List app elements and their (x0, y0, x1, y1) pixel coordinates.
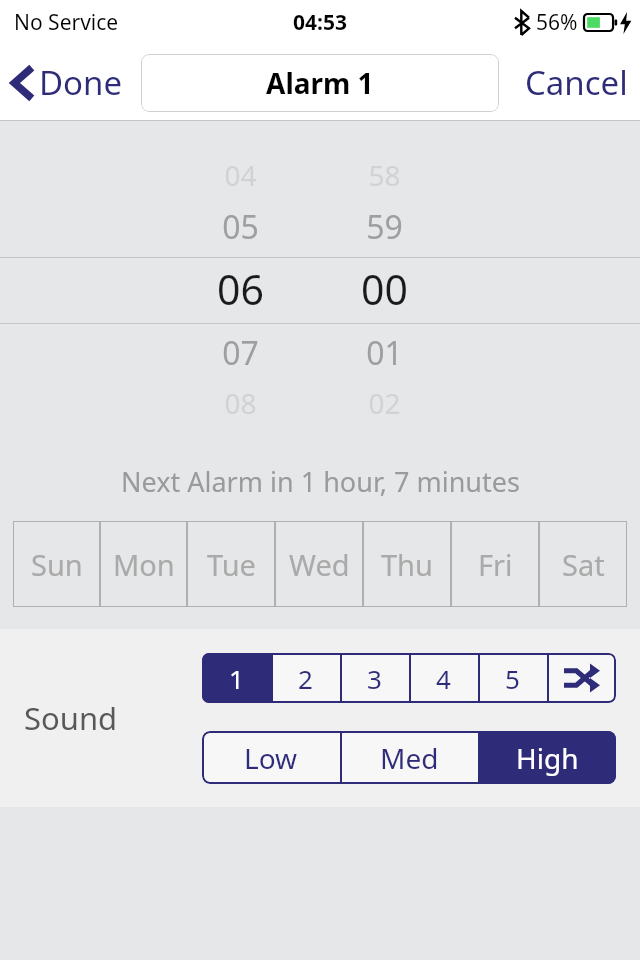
staticText: Done (39, 60, 123, 105)
button[interactable]: 3 (340, 653, 409, 703)
staticText: 3 (367, 661, 382, 696)
staticText: Thu (381, 545, 433, 584)
button[interactable]: Mon (100, 521, 187, 607)
staticText: Mon (113, 545, 175, 584)
button[interactable]: Wed (275, 521, 363, 607)
staticText: 07 (222, 331, 259, 375)
staticText: 04 (224, 156, 257, 194)
staticText: Tue (207, 545, 256, 584)
staticText: 59 (366, 205, 403, 249)
button[interactable]: Thu (363, 521, 451, 607)
staticText: No Service (14, 8, 119, 37)
button[interactable]: 2 (271, 653, 340, 703)
staticText: 1 (229, 661, 244, 696)
staticText: Fri (478, 545, 513, 584)
staticText: Wed (289, 545, 350, 584)
staticText: 00 (361, 261, 408, 317)
staticText: 2 (298, 661, 313, 696)
staticText: 5 (505, 661, 520, 696)
staticText: 56% (536, 8, 578, 37)
staticText: 04:53 (293, 8, 347, 37)
staticText: 4 (436, 661, 451, 696)
staticText: Next Alarm in 1 hour, 7 minutes (121, 463, 520, 500)
staticText: 08 (224, 384, 257, 422)
button[interactable]: 5 (478, 653, 547, 703)
staticText: Cancel (525, 60, 628, 105)
staticText: 06 (217, 261, 264, 317)
button[interactable]: Med (340, 731, 478, 784)
staticText: Sat (562, 545, 605, 584)
button[interactable]: High (478, 731, 616, 784)
staticText: 02 (368, 384, 401, 422)
button[interactable]: Alarm 1 (141, 54, 499, 112)
button[interactable]: Sun (13, 521, 100, 607)
staticText: Med (380, 739, 439, 777)
button[interactable]: Done (0, 54, 131, 111)
staticText: High (516, 739, 579, 777)
button[interactable]: Low (202, 731, 340, 784)
staticText: Low (244, 739, 298, 777)
button[interactable]: Cancel (513, 54, 640, 111)
staticText: 05 (222, 205, 259, 249)
button[interactable]: 4 (409, 653, 478, 703)
staticText: Alarm 1 (266, 64, 374, 102)
button[interactable]: Fri (451, 521, 539, 607)
button[interactable]: 1 (202, 653, 271, 703)
button[interactable]: Shuffle (547, 653, 616, 703)
button[interactable]: Tue (187, 521, 275, 607)
staticText: 58 (368, 156, 401, 194)
staticText: 01 (366, 331, 403, 375)
button[interactable]: Sat (539, 521, 627, 607)
staticText: Sun (31, 545, 83, 584)
staticText: Sound (24, 697, 118, 739)
